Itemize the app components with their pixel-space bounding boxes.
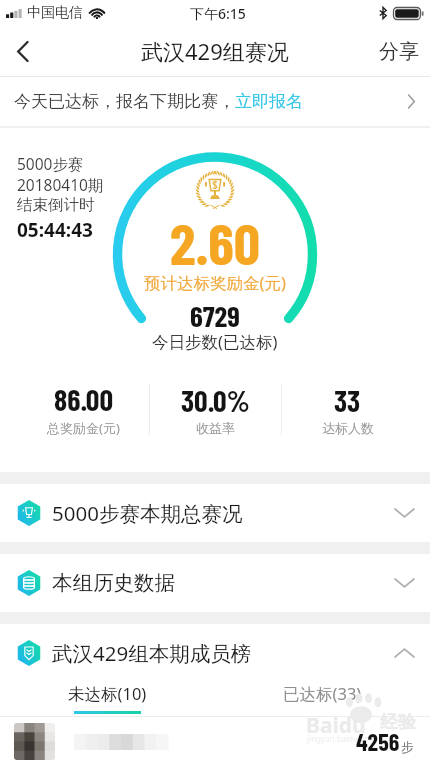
staticText: 2.60 (170, 207, 261, 277)
staticText: 本组历史数据 (52, 570, 175, 596)
staticText: 分享 (379, 39, 419, 64)
staticText: 已达标(33) (283, 682, 362, 705)
staticText: 武汉429组赛况 (141, 36, 289, 66)
staticText: 立即报名 (235, 91, 303, 112)
button[interactable]: 4256 (14, 717, 414, 766)
button[interactable]: 已达标(33) (215, 681, 430, 716)
button[interactable]: 武汉429组本期成员榜 (0, 624, 430, 681)
staticText: 收益率 (196, 420, 235, 436)
button[interactable]: 今天已达标，报名下期比赛， (0, 77, 430, 126)
staticText: 武汉429组本期成员榜 (52, 639, 252, 667)
staticText: 达标人数 (322, 420, 374, 436)
staticText: 步 (401, 739, 414, 755)
staticText: 20180410期 (17, 174, 104, 195)
staticText: 今日步数(已达标) (152, 330, 278, 353)
staticText: 今天已达标，报名下期比赛， (14, 91, 235, 112)
staticText: 5000步赛 (17, 153, 84, 174)
staticText: 结束倒计时 (17, 195, 95, 215)
staticText: Baidu (306, 711, 366, 740)
staticText: 5000步赛本期总赛况 (52, 499, 243, 527)
staticText: 86.00 (54, 381, 113, 417)
button[interactable]: 5000步赛本期总赛况 (0, 484, 430, 542)
staticText: 预计达标奖励金(元) (144, 271, 286, 294)
staticText: jingyan.baidu.com (307, 733, 377, 744)
staticText: 4256 (356, 727, 400, 756)
staticText: 经验 (380, 711, 416, 734)
button[interactable]: 未达标(10) (0, 681, 215, 716)
staticText: 未达标(10) (68, 682, 147, 705)
staticText: 33 (334, 382, 361, 418)
staticText: 总奖励金(元) (47, 419, 120, 437)
button[interactable]: 本组历史数据 (0, 554, 430, 612)
button[interactable]: 分享 (379, 26, 419, 76)
staticText: 下午6:15 (190, 4, 246, 23)
staticText: 05:44:43 (17, 217, 93, 243)
staticText: 30.0% (181, 382, 250, 418)
staticText: 中国电信 (27, 4, 83, 22)
button[interactable]: 返回 (0, 26, 46, 76)
staticText: 6729 (190, 298, 240, 333)
